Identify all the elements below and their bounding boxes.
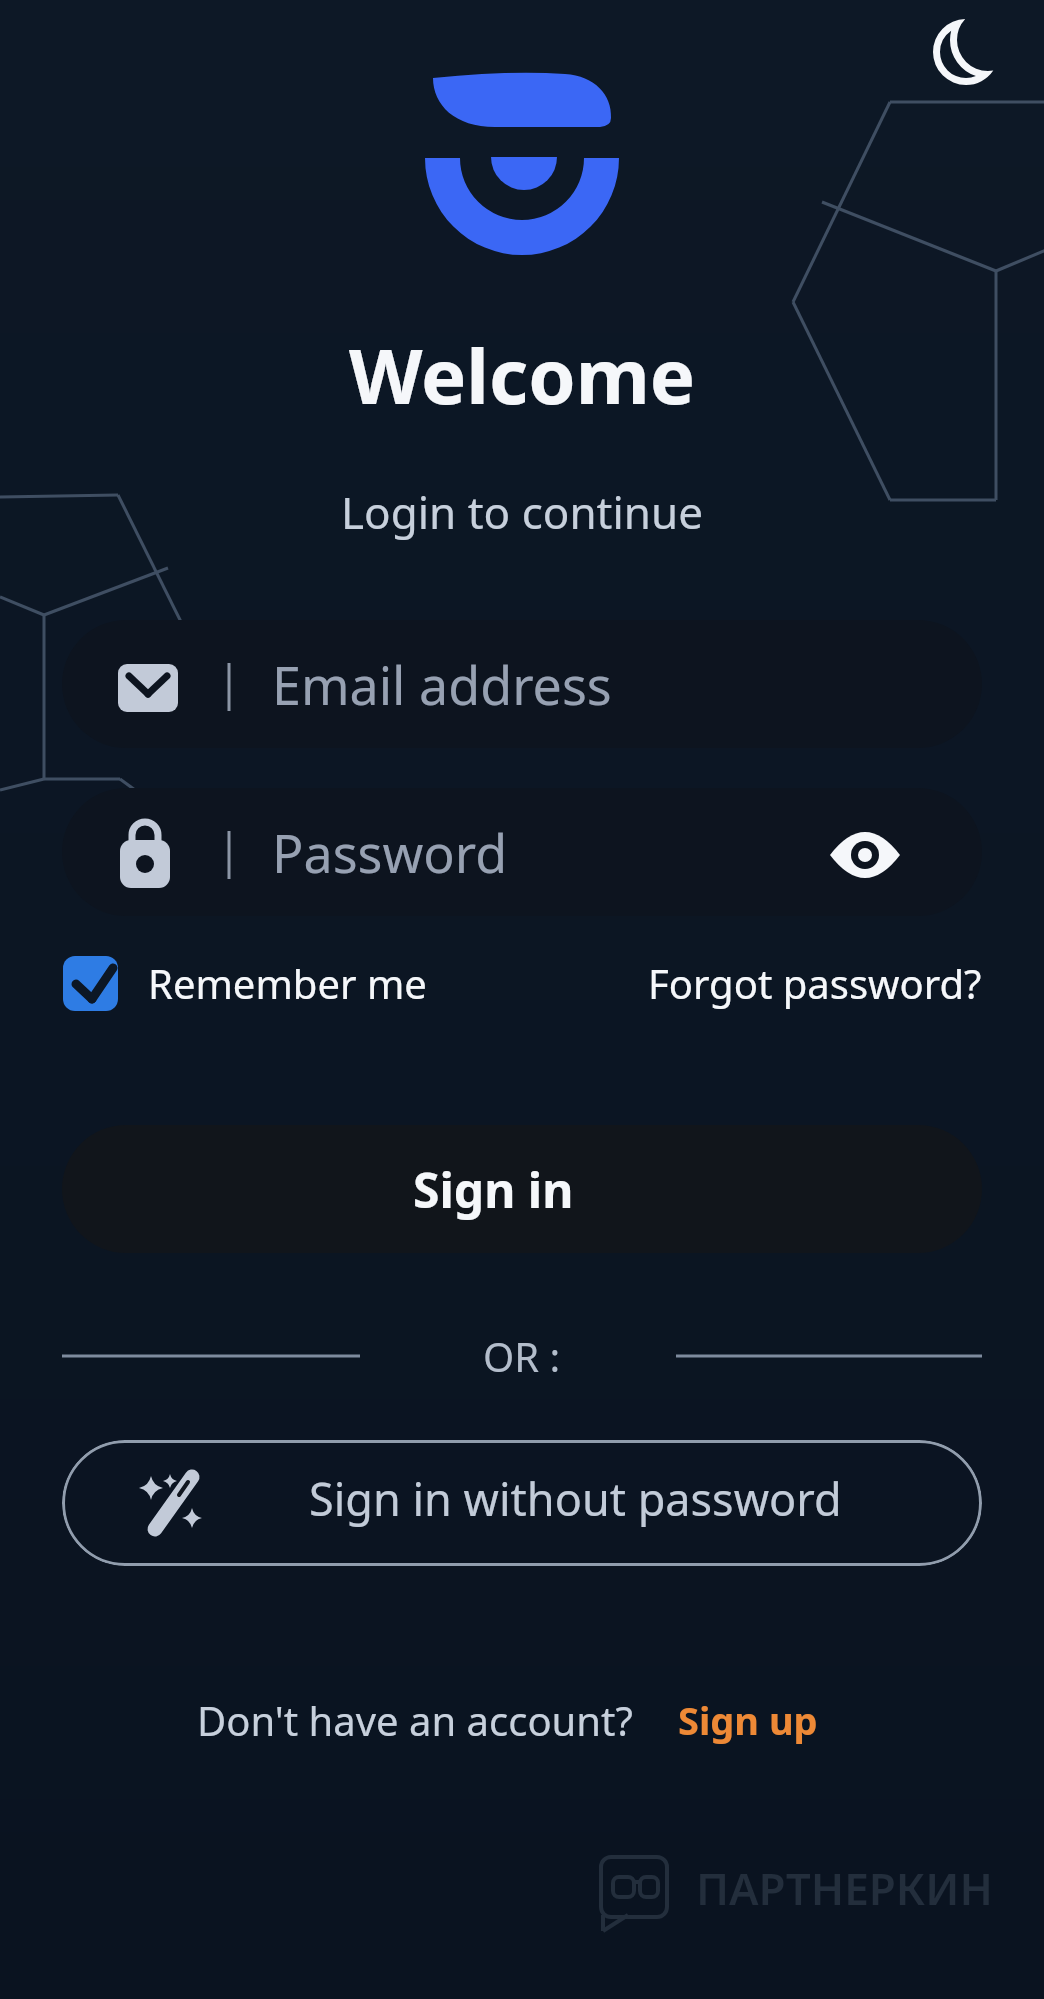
button[interactable]: Sign in without password [62, 1440, 982, 1566]
staticText: Email address [272, 649, 612, 720]
button[interactable]: Sign in [62, 1125, 982, 1253]
staticText: Welcome [349, 323, 696, 427]
staticText: OR : [483, 1329, 561, 1383]
button[interactable]: Email address [62, 620, 982, 748]
staticText: Sign up [678, 1694, 818, 1746]
button[interactable] [827, 816, 903, 888]
button[interactable]: Sign up [678, 1694, 818, 1746]
button[interactable]: Remember me [148, 950, 427, 1016]
staticText: Remember me [148, 956, 427, 1010]
button[interactable] [920, 10, 1004, 94]
staticText: Login to continue [341, 482, 704, 542]
staticText: Password [272, 817, 508, 888]
button[interactable] [63, 956, 118, 1011]
staticText: Forgot password? [648, 956, 982, 1010]
staticText: Sign in without password [309, 1468, 842, 1529]
button[interactable]: Password [62, 788, 982, 916]
staticText: ПАРТНЕРКИН [696, 1858, 993, 1918]
button[interactable]: Forgot password? [648, 956, 982, 1010]
staticText: Sign in [413, 1157, 574, 1222]
staticText: Don't have an account? [197, 1693, 633, 1747]
